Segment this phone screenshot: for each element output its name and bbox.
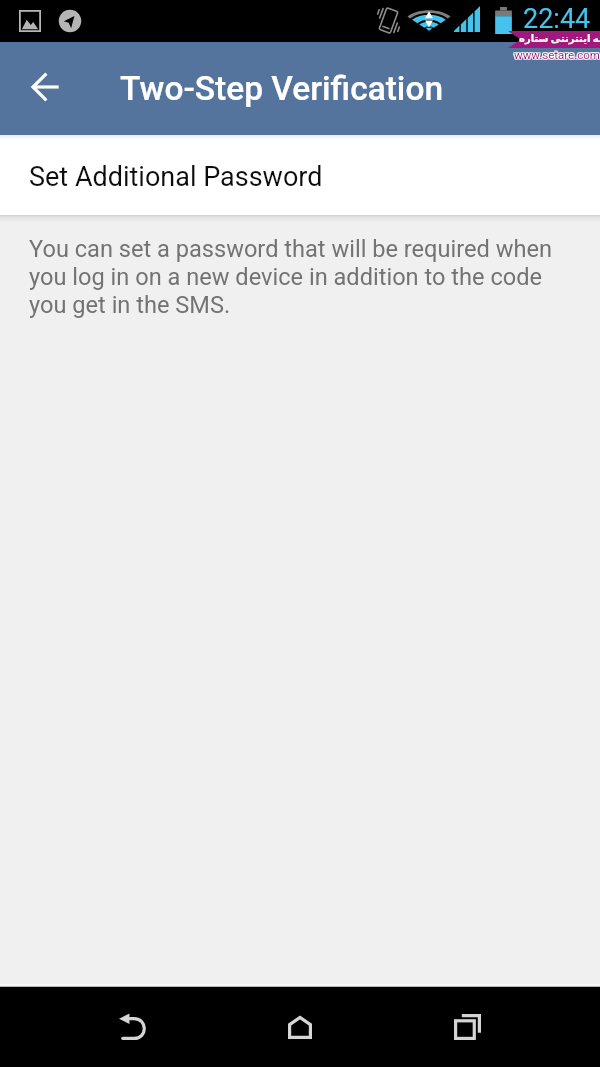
staticText: Set Additional Password bbox=[29, 161, 323, 193]
staticText: 22:44 bbox=[523, 3, 591, 35]
button[interactable]: Back bbox=[13, 55, 77, 119]
button[interactable]: Recent apps bbox=[427, 987, 507, 1067]
staticText: www.setare.com bbox=[513, 48, 599, 61]
staticText: Two-Step Verification bbox=[120, 69, 444, 108]
staticText: www.setare.com bbox=[514, 48, 600, 61]
staticText: www.setare.com bbox=[514, 47, 600, 60]
staticText: مجله اینترنتی ستاره bbox=[519, 33, 600, 45]
staticText: www.setare.com bbox=[515, 49, 600, 62]
staticText: www.setare.com bbox=[514, 49, 600, 62]
staticText: www.setare.com bbox=[513, 47, 599, 60]
button[interactable]: Back bbox=[93, 986, 173, 1066]
staticText: www.setare.com bbox=[513, 49, 599, 62]
staticText: www.setare.com bbox=[515, 48, 600, 61]
staticText: www.setare.com bbox=[515, 47, 600, 60]
button[interactable]: Home bbox=[260, 987, 340, 1067]
staticText: You can set a password that will be requ… bbox=[29, 235, 574, 319]
